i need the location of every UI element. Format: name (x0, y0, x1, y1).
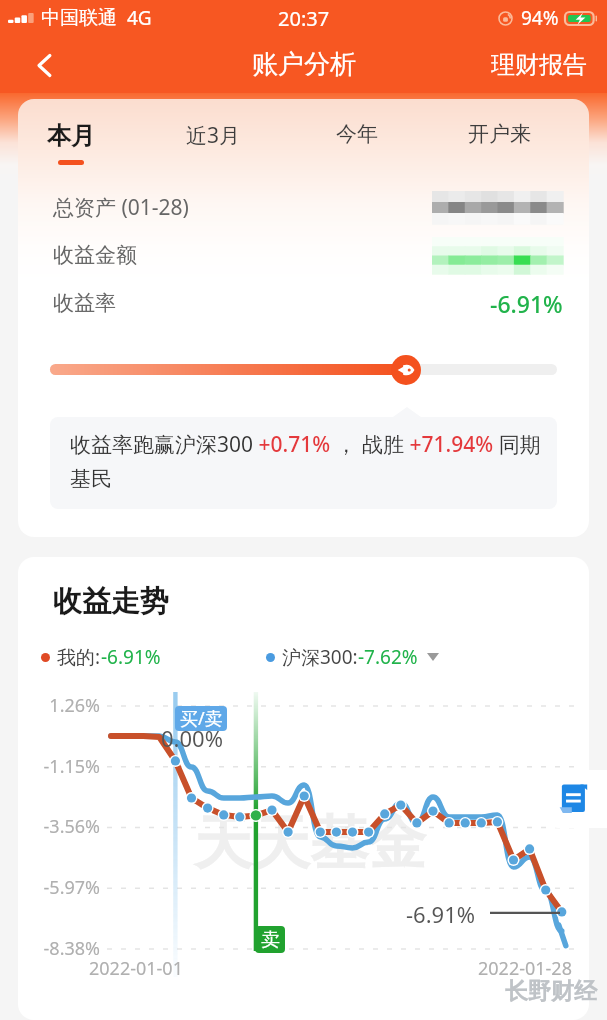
staticText: 每日收益可切回旧版查看> (18, 997, 589, 1000)
button[interactable]: Report (529, 770, 607, 828)
staticText: -6.91% (101, 644, 161, 670)
staticText: 我的: (57, 644, 101, 670)
staticText: 94% (521, 5, 559, 31)
staticText: 近3月 (186, 121, 241, 150)
staticText: 总资产 (01-28) (53, 193, 189, 222)
staticText: 长野财经 (505, 977, 597, 1006)
staticText: 卖 (261, 928, 280, 952)
button[interactable]: 近3月 (142, 121, 285, 164)
staticText: -6.91% (406, 899, 476, 929)
staticText: 买/卖 (180, 706, 223, 731)
staticText: 收益金额 (53, 242, 137, 268)
button[interactable]: 本月 (18, 121, 142, 165)
staticText: 理财报告 (491, 50, 587, 80)
staticText: 中国联通 (41, 6, 117, 30)
staticText: 账户分析 (252, 48, 356, 81)
button[interactable]: Back (16, 37, 72, 93)
staticText: 本月 (47, 121, 95, 151)
staticText: -8.38% (20, 936, 100, 961)
staticText: 收益率跑赢沪深300 +0.71% ， 战胜 +71.94% 同期基民 (70, 430, 545, 493)
staticText: 今年 (336, 121, 378, 147)
staticText: 4G (127, 5, 152, 31)
staticText: 2022-01-28 (478, 956, 572, 981)
button[interactable]: 今年 (285, 121, 428, 161)
staticText: -3.56% (20, 814, 100, 839)
staticText: -5.97% (20, 875, 100, 900)
staticText: 1.26% (20, 693, 100, 718)
staticText: 收益率 (53, 290, 116, 316)
staticText: 开户来 (468, 121, 531, 147)
staticText: 沪深300: (282, 644, 358, 670)
staticText: 天天基金 (194, 807, 426, 880)
staticText: 2022-01-01 (89, 956, 183, 981)
button[interactable]: 开户来 (428, 121, 571, 161)
staticText: 20:37 (278, 5, 330, 32)
staticText: -1.15% (20, 754, 100, 779)
button[interactable]: 理财报告 (475, 38, 607, 92)
staticText: -6.91% (490, 288, 563, 319)
staticText: 0.00% (161, 723, 223, 753)
staticText: -7.62% (358, 644, 418, 670)
button[interactable]: Performance marker (391, 355, 421, 385)
staticText: 收益走势 (53, 583, 169, 620)
